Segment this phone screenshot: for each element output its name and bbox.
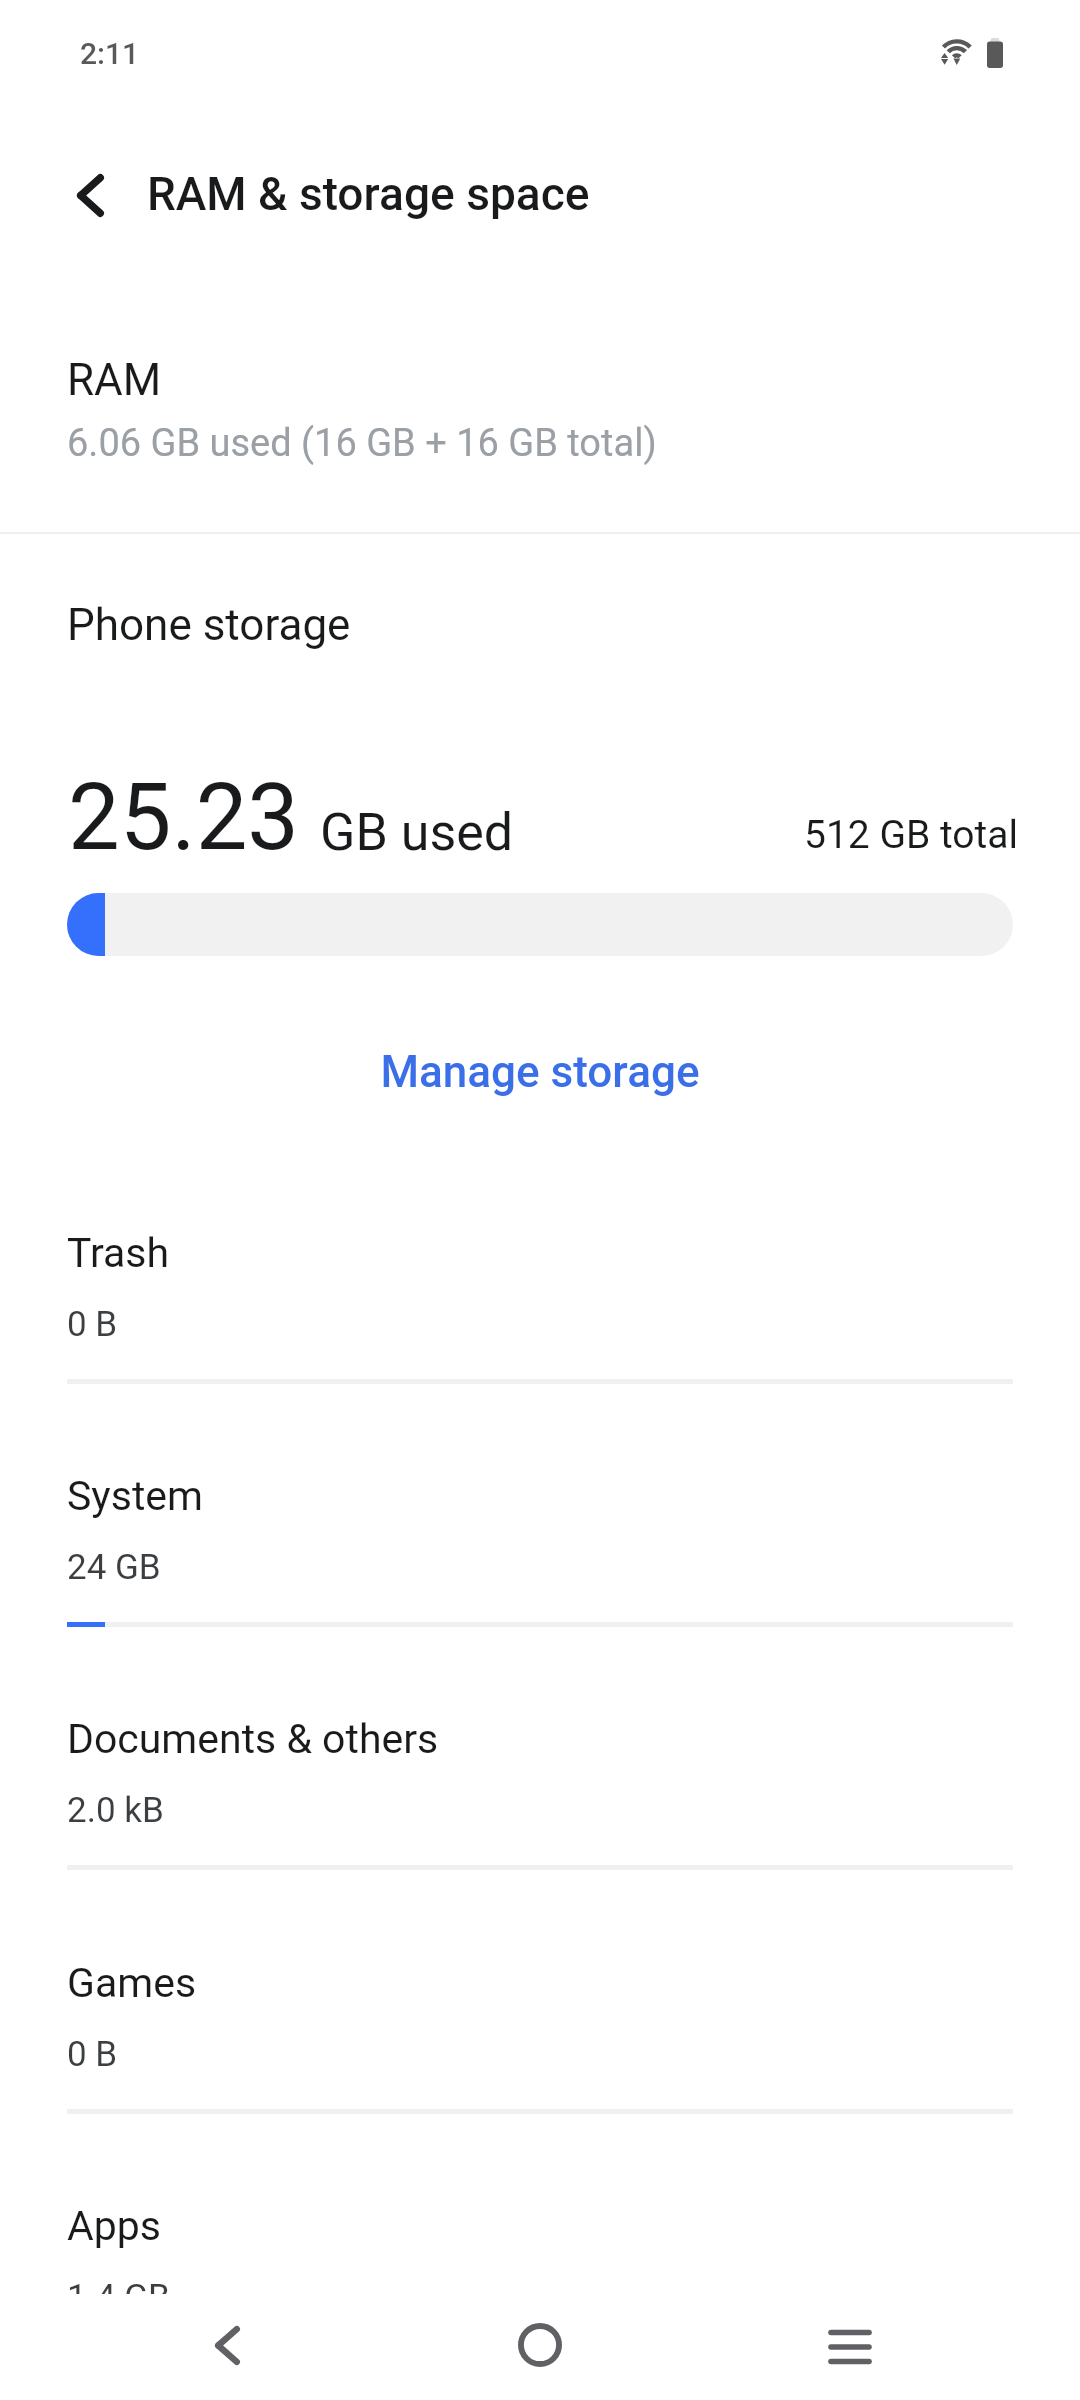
staticText: Documents & others xyxy=(67,1715,439,1763)
staticText: 25.23 xyxy=(68,764,300,872)
staticText: Games xyxy=(67,1959,197,2007)
button[interactable]: Back xyxy=(167,2285,287,2400)
button[interactable]: Home xyxy=(480,2285,600,2400)
staticText: Manage storage xyxy=(380,1046,700,1098)
staticText: 1.4 GB xyxy=(67,2277,170,2318)
button[interactable] xyxy=(0,1420,1080,1663)
button[interactable] xyxy=(0,1177,1080,1420)
staticText: Apps xyxy=(67,2202,161,2250)
staticText: RAM xyxy=(67,354,162,406)
staticText: GB used xyxy=(320,802,514,863)
button[interactable] xyxy=(0,330,1080,530)
staticText: 512 GB total xyxy=(804,812,1019,858)
button[interactable] xyxy=(0,1907,1080,2150)
staticText: System xyxy=(67,1472,204,1520)
button[interactable]: Recent apps xyxy=(790,2286,910,2400)
button[interactable]: Back xyxy=(46,151,134,239)
button[interactable] xyxy=(0,1663,1080,1906)
staticText: 2.0 kB xyxy=(67,1790,164,1831)
button[interactable] xyxy=(0,2150,1080,2393)
staticText: Phone storage xyxy=(67,599,351,651)
staticText: 2:11 xyxy=(80,36,140,71)
staticText: 0 B xyxy=(67,1304,118,1345)
staticText: RAM & storage space xyxy=(147,167,590,221)
staticText: Trash xyxy=(67,1229,170,1277)
staticText: 6.06 GB used (16 GB + 16 GB total) xyxy=(67,421,657,466)
staticText: 0 B xyxy=(67,2034,118,2075)
staticText: 24 GB xyxy=(67,1547,161,1588)
button[interactable]: Manage storage xyxy=(350,1022,730,1122)
